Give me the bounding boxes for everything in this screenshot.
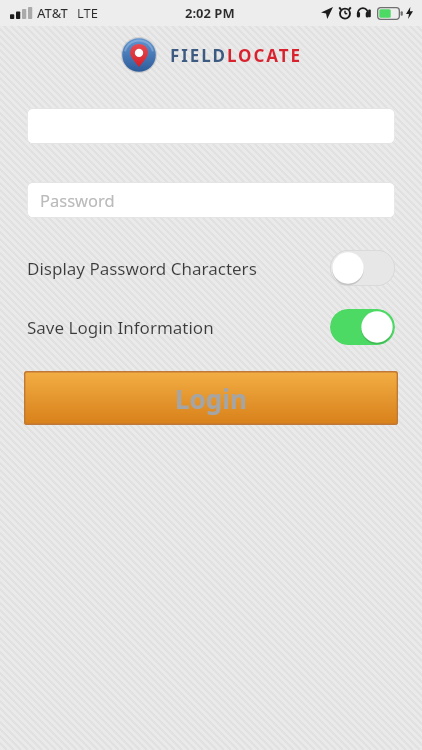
staticText: FIELD: [170, 44, 227, 67]
staticText: LTE: [77, 4, 99, 22]
staticText: AT&T: [37, 4, 68, 22]
button[interactable]: Display Password Characters: [330, 250, 395, 286]
button[interactable]: Save Login Information: [330, 309, 395, 345]
button[interactable]: Login: [24, 371, 398, 425]
button[interactable]: Password: [27, 182, 395, 218]
staticText: Save Login Information: [27, 316, 330, 339]
button[interactable]: Username: [27, 108, 395, 144]
staticText: 2:02 PM: [185, 4, 235, 22]
staticText: Display Password Characters: [27, 257, 330, 280]
staticText: Login: [175, 381, 247, 416]
staticText: LOCATE: [227, 44, 302, 67]
staticText: Password: [40, 189, 115, 211]
